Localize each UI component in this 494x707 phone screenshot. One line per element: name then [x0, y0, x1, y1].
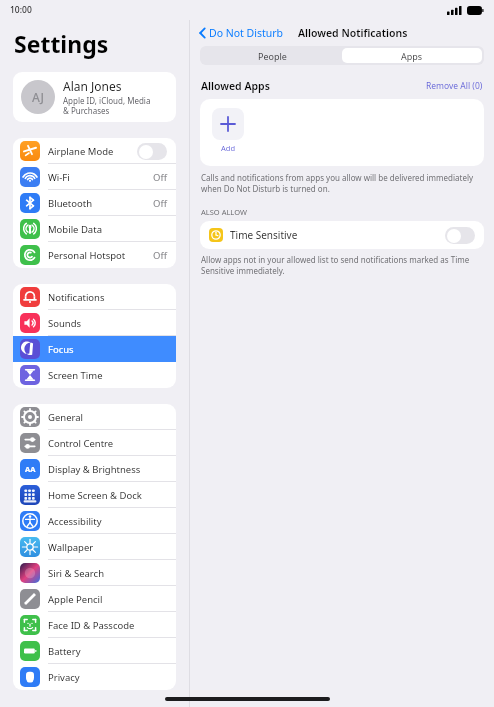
- staticText: Wallpaper: [48, 541, 167, 554]
- staticText: AA: [25, 464, 36, 474]
- staticText: Screen Time: [48, 369, 167, 382]
- staticText: Siri & Search: [48, 567, 167, 580]
- staticText: Sounds: [48, 317, 167, 330]
- staticText: Do Not Disturb: [209, 26, 284, 40]
- staticText: Airplane Mode: [48, 145, 137, 158]
- button[interactable]: Airplane Mode: [13, 138, 176, 164]
- staticText: Settings: [14, 28, 109, 59]
- button[interactable]: Wallpaper: [13, 534, 176, 560]
- staticText: Calls and notifications from apps you al…: [201, 172, 474, 194]
- staticText: Notifications: [48, 291, 167, 304]
- button[interactable]: Remove All (0): [426, 80, 483, 92]
- staticText: Bluetooth: [48, 197, 153, 210]
- staticText: Privacy: [48, 671, 167, 684]
- staticText: Focus: [48, 343, 167, 356]
- staticText: Alan Jones: [63, 78, 122, 94]
- staticText: 10:00: [10, 4, 32, 16]
- button[interactable]: Control Centre: [13, 430, 176, 456]
- staticText: Battery: [48, 645, 167, 658]
- button[interactable]: Mobile Data: [13, 216, 176, 242]
- button[interactable]: AA: [13, 456, 176, 482]
- staticText: General: [48, 411, 167, 424]
- staticText: Accessibility: [48, 515, 167, 528]
- button[interactable]: Time Sensitive: [200, 221, 484, 249]
- button[interactable]: Apple Pencil: [13, 586, 176, 612]
- staticText: Display & Brightness: [48, 463, 167, 476]
- button[interactable]: Face ID & Passcode: [13, 612, 176, 638]
- button[interactable]: People: [202, 48, 342, 63]
- staticText: People: [258, 50, 287, 62]
- staticText: Allowed Apps: [201, 79, 270, 93]
- button[interactable]: Bluetooth: [13, 190, 176, 216]
- staticText: ALSO ALLOW: [201, 207, 247, 217]
- staticText: Add: [221, 143, 236, 153]
- staticText: Allow apps not in your allowed list to s…: [201, 254, 470, 276]
- button[interactable]: Screen Time: [13, 362, 176, 388]
- staticText: Home Screen & Dock: [48, 489, 167, 502]
- staticText: Remove All (0): [426, 80, 483, 92]
- button[interactable]: Apps: [342, 48, 482, 63]
- staticText: Off: [153, 171, 167, 184]
- button[interactable]: Battery: [13, 638, 176, 664]
- staticText: Time Sensitive: [230, 228, 445, 242]
- button[interactable]: Personal Hotspot: [13, 242, 176, 268]
- button[interactable]: Accessibility: [13, 508, 176, 534]
- staticText: Wi-Fi: [48, 171, 153, 184]
- staticText: Off: [153, 249, 167, 262]
- button[interactable]: Add app: [212, 108, 244, 153]
- button[interactable]: Home Screen & Dock: [13, 482, 176, 508]
- staticText: Control Centre: [48, 437, 167, 450]
- staticText: Apple Pencil: [48, 593, 167, 606]
- button[interactable]: Siri & Search: [13, 560, 176, 586]
- staticText: AJ: [32, 89, 44, 105]
- button[interactable]: Sounds: [13, 310, 176, 336]
- button[interactable]: Privacy: [13, 664, 176, 690]
- staticText: Off: [153, 197, 167, 210]
- button[interactable]: Do Not Disturb: [197, 24, 286, 42]
- button[interactable]: AJ: [13, 72, 176, 122]
- button[interactable]: Notifications: [13, 284, 176, 310]
- staticText: Apps: [401, 50, 423, 62]
- button[interactable]: Wi-Fi: [13, 164, 176, 190]
- staticText: Mobile Data: [48, 223, 167, 236]
- staticText: Personal Hotspot: [48, 249, 153, 262]
- staticText: Apple ID, iCloud, Media & Purchases: [63, 95, 151, 116]
- button[interactable]: Focus: [13, 336, 176, 362]
- staticText: Face ID & Passcode: [48, 619, 167, 632]
- button[interactable]: General: [13, 404, 176, 430]
- staticText: Allowed Notifications: [298, 26, 408, 40]
